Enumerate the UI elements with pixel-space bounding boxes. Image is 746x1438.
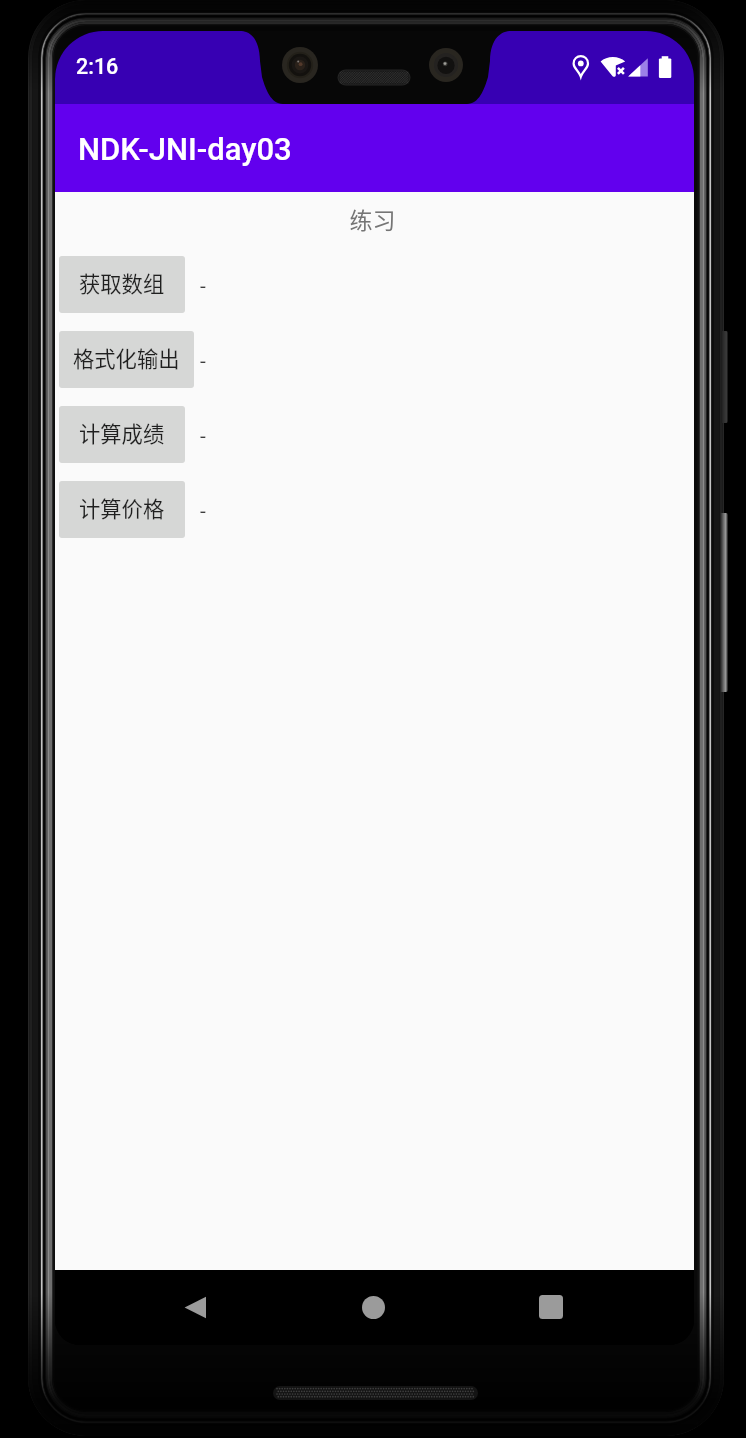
button[interactable]: Recent apps bbox=[491, 1276, 611, 1338]
button[interactable]: Home bbox=[313, 1276, 433, 1338]
button[interactable]: 计算价格 bbox=[59, 481, 185, 538]
staticText: - bbox=[200, 499, 206, 524]
staticText: 获取数组 bbox=[79, 267, 165, 298]
staticText: NDK-JNI-day03 bbox=[78, 131, 292, 167]
staticText: 格式化输出 bbox=[73, 342, 180, 373]
staticText: - bbox=[200, 349, 206, 374]
button[interactable]: 计算成绩 bbox=[59, 406, 185, 463]
button[interactable]: 获取数组 bbox=[59, 256, 185, 313]
staticText: 练习 bbox=[55, 202, 692, 235]
staticText: 计算价格 bbox=[79, 492, 165, 523]
staticText: 2:16 bbox=[76, 54, 119, 79]
staticText: 计算成绩 bbox=[79, 417, 165, 448]
staticText: - bbox=[200, 424, 206, 449]
button[interactable]: 格式化输出 bbox=[59, 331, 194, 388]
staticText: - bbox=[200, 274, 206, 299]
button[interactable]: Back bbox=[135, 1276, 255, 1338]
